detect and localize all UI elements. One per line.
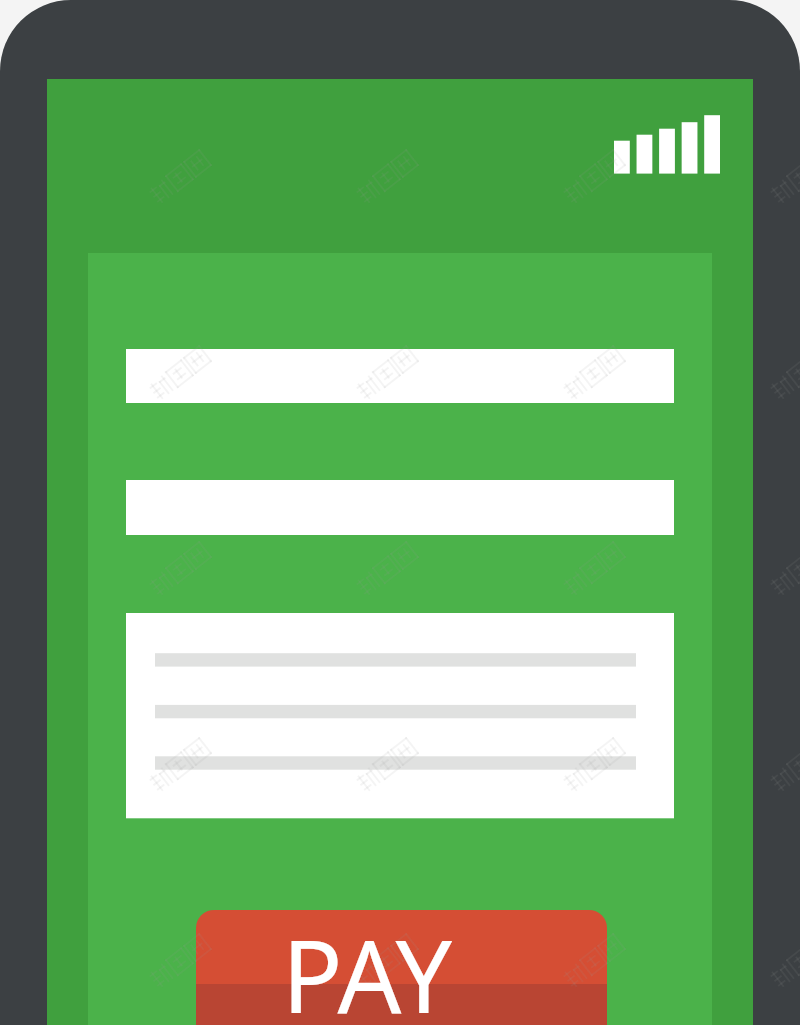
- button[interactable]: PAY: [196, 910, 607, 1025]
- staticText: PAY: [282, 906, 452, 1021]
